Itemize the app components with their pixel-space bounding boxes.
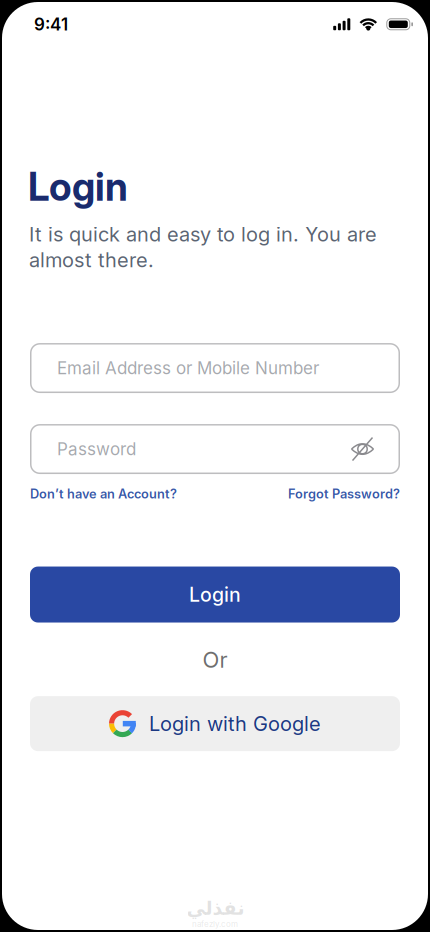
button[interactable]: Login with Google xyxy=(30,696,400,751)
staticText: Email Address or Mobile Number xyxy=(57,358,319,378)
staticText: Or xyxy=(202,646,227,673)
button[interactable]: Forgot Password? xyxy=(288,486,400,502)
staticText: Password xyxy=(57,439,136,459)
staticText: Forgot Password? xyxy=(288,486,400,502)
staticText: 9:41 xyxy=(34,14,68,35)
staticText: Login with Google xyxy=(149,712,321,736)
button[interactable]: Don’t have an Account? xyxy=(30,486,177,502)
staticText: نفذلي xyxy=(186,897,244,919)
staticText: Don’t have an Account? xyxy=(30,486,177,502)
button[interactable]: Show password xyxy=(351,436,374,462)
staticText: nafezly.com xyxy=(192,919,238,929)
staticText: Login xyxy=(28,164,128,210)
staticText: Login xyxy=(189,583,241,606)
button[interactable]: Login xyxy=(30,566,400,622)
staticText: It is quick and easy to log in. You are … xyxy=(29,222,377,272)
